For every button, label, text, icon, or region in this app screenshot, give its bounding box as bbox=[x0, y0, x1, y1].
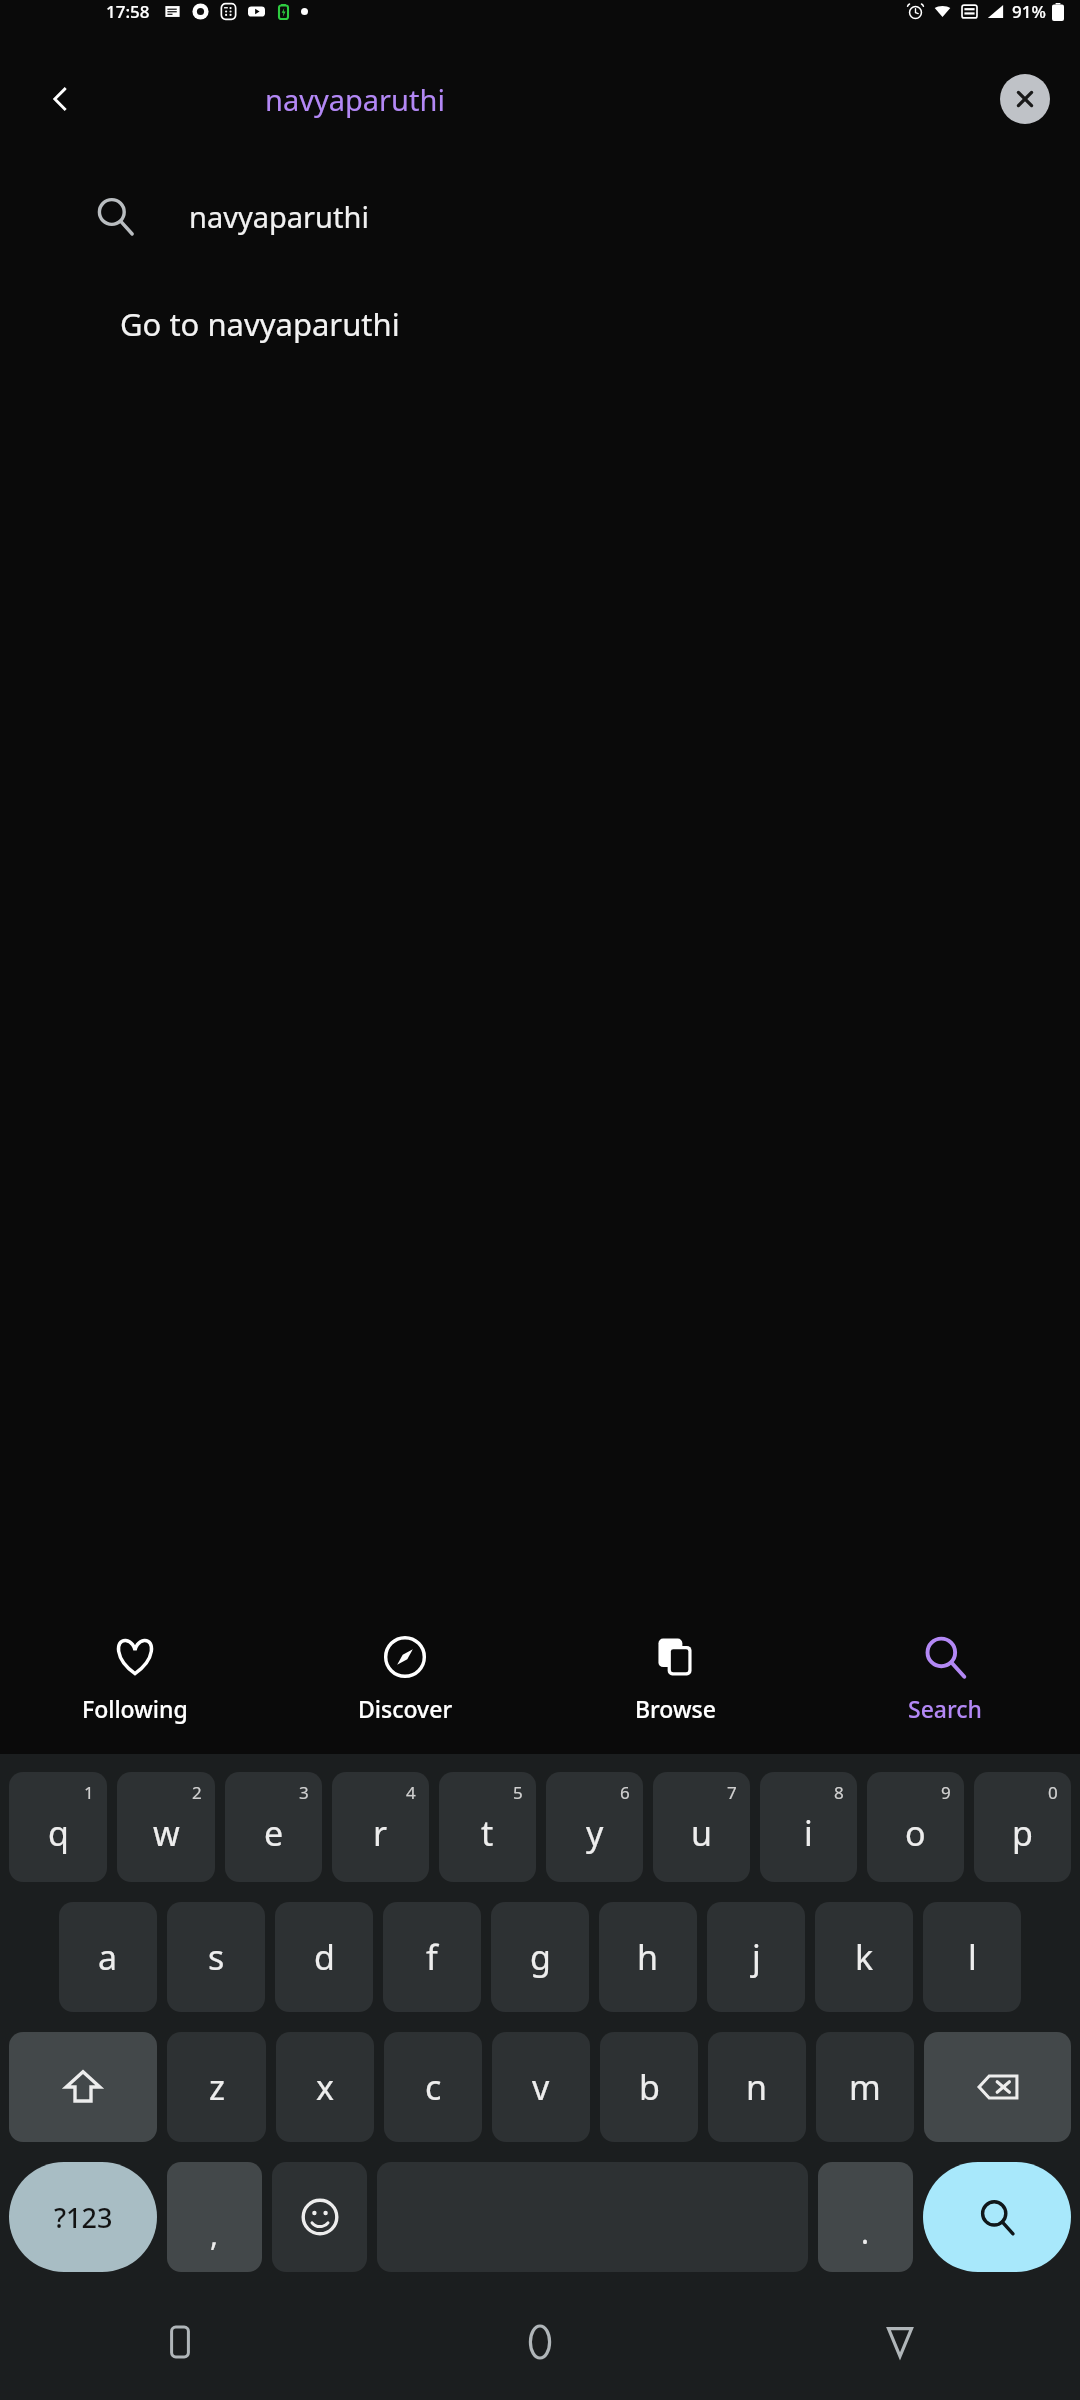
button[interactable]: b bbox=[600, 2032, 698, 2142]
staticText: y bbox=[586, 1810, 604, 1856]
staticText: h bbox=[637, 1934, 659, 1980]
staticText: z bbox=[209, 2064, 225, 2110]
button[interactable]: r bbox=[332, 1772, 429, 1882]
staticText: q bbox=[48, 1810, 69, 1856]
button[interactable]: , bbox=[167, 2162, 262, 2272]
button[interactable]: i bbox=[760, 1772, 857, 1882]
staticText: x bbox=[316, 2064, 334, 2110]
staticText: Following bbox=[82, 1693, 188, 1724]
button[interactable]: Emoji bbox=[272, 2162, 367, 2272]
staticText: t bbox=[481, 1810, 494, 1856]
button[interactable]: m bbox=[816, 2032, 914, 2142]
button[interactable]: z bbox=[167, 2032, 266, 2142]
staticText: n bbox=[746, 2064, 768, 2110]
staticText: m bbox=[849, 2064, 881, 2110]
staticText: c bbox=[425, 2064, 442, 2110]
staticText: 0 bbox=[1048, 1781, 1058, 1804]
button[interactable]: Go to navyaparuthi bbox=[0, 270, 1080, 378]
button[interactable]: Back bbox=[34, 73, 86, 125]
button[interactable]: Recents bbox=[0, 2284, 360, 2400]
staticText: l bbox=[968, 1934, 977, 1980]
button[interactable]: s bbox=[167, 1902, 265, 2012]
staticText: Search bbox=[908, 1693, 982, 1724]
staticText: r bbox=[373, 1810, 388, 1856]
staticText: u bbox=[691, 1810, 713, 1856]
staticText: 8 bbox=[834, 1781, 844, 1804]
button[interactable]: t bbox=[439, 1772, 536, 1882]
button[interactable]: . bbox=[818, 2162, 913, 2272]
button[interactable]: Shift bbox=[9, 2032, 157, 2142]
button[interactable]: Back bbox=[720, 2284, 1080, 2400]
button[interactable]: x bbox=[276, 2032, 374, 2142]
button[interactable]: d bbox=[275, 1902, 373, 2012]
staticText: s bbox=[208, 1934, 225, 1980]
staticText: i bbox=[804, 1810, 813, 1856]
button[interactable]: Browse bbox=[540, 1604, 810, 1754]
staticText: 5 bbox=[513, 1781, 523, 1804]
staticText: 91% bbox=[1012, 0, 1046, 23]
button[interactable]: Home bbox=[360, 2284, 720, 2400]
staticText: 6 bbox=[620, 1781, 630, 1804]
button[interactable]: o bbox=[867, 1772, 964, 1882]
staticText: Browse bbox=[635, 1693, 716, 1724]
button[interactable]: v bbox=[492, 2032, 590, 2142]
staticText: o bbox=[905, 1810, 926, 1856]
staticText: 17:58 bbox=[106, 0, 150, 23]
button[interactable]: g bbox=[491, 1902, 589, 2012]
staticText: b bbox=[639, 2064, 660, 2110]
button[interactable]: ?123 bbox=[9, 2162, 157, 2272]
staticText: . bbox=[861, 2212, 870, 2253]
button[interactable]: k bbox=[815, 1902, 913, 2012]
button[interactable]: Backspace bbox=[924, 2032, 1071, 2142]
staticText: 9 bbox=[941, 1781, 951, 1804]
button[interactable]: q bbox=[9, 1772, 107, 1882]
staticText: j bbox=[752, 1934, 761, 1980]
staticText: g bbox=[530, 1934, 551, 1980]
staticText: 7 bbox=[727, 1781, 737, 1804]
button[interactable]: e bbox=[225, 1772, 322, 1882]
button[interactable]: j bbox=[707, 1902, 805, 2012]
button[interactable]: l bbox=[923, 1902, 1021, 2012]
button[interactable]: Clear search bbox=[1000, 74, 1050, 124]
staticText: 2 bbox=[192, 1781, 202, 1804]
button[interactable]: h bbox=[599, 1902, 697, 2012]
button[interactable]: navyaparuthi bbox=[0, 162, 1080, 270]
staticText: navyaparuthi bbox=[265, 80, 445, 119]
button[interactable]: Following bbox=[0, 1604, 270, 1754]
staticText: Go to navyaparuthi bbox=[120, 303, 400, 345]
button[interactable]: Search bbox=[810, 1604, 1080, 1754]
button[interactable]: p bbox=[974, 1772, 1071, 1882]
button[interactable]: Discover bbox=[270, 1604, 540, 1754]
staticText: 3 bbox=[299, 1781, 309, 1804]
button[interactable]: navyaparuthi bbox=[120, 64, 930, 134]
button[interactable]: Search bbox=[923, 2162, 1071, 2272]
button[interactable]: c bbox=[384, 2032, 482, 2142]
button[interactable]: a bbox=[59, 1902, 157, 2012]
staticText: 1 bbox=[84, 1781, 94, 1804]
staticText: v bbox=[532, 2064, 550, 2110]
staticText: a bbox=[98, 1934, 118, 1980]
button[interactable]: w bbox=[117, 1772, 215, 1882]
button[interactable]: f bbox=[383, 1902, 481, 2012]
staticText: navyaparuthi bbox=[189, 197, 369, 236]
staticText: d bbox=[314, 1934, 335, 1980]
button[interactable]: n bbox=[708, 2032, 806, 2142]
staticText: ?123 bbox=[54, 2199, 113, 2236]
button[interactable]: u bbox=[653, 1772, 750, 1882]
staticText: Discover bbox=[358, 1693, 453, 1724]
button[interactable]: y bbox=[546, 1772, 643, 1882]
staticText: p bbox=[1012, 1810, 1033, 1856]
staticText: 4 bbox=[406, 1781, 416, 1804]
staticText: k bbox=[855, 1934, 874, 1980]
staticText: e bbox=[264, 1810, 284, 1856]
staticText: w bbox=[153, 1810, 180, 1856]
staticText: , bbox=[210, 2214, 219, 2255]
staticText: f bbox=[426, 1934, 438, 1980]
